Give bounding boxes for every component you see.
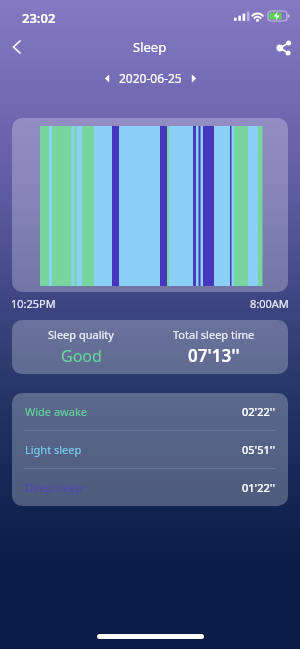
button[interactable]: Light sleep [12, 431, 288, 468]
staticText: Light sleep [25, 442, 82, 457]
staticText: Good [61, 345, 102, 367]
staticText: 10:25PM [11, 296, 56, 311]
staticText: 23:02 [22, 9, 56, 27]
staticText: 05'51'' [242, 442, 275, 457]
staticText: Sleep [133, 38, 167, 56]
staticText: Sleep quality [48, 327, 114, 342]
staticText: 01'22'' [242, 480, 275, 495]
button[interactable]: Wide awake [12, 393, 288, 430]
staticText: 8:00AM [250, 296, 289, 311]
staticText: Deep sleep [25, 480, 83, 495]
button[interactable] [191, 74, 197, 83]
button[interactable] [6, 36, 26, 58]
staticText: 07'13'' [188, 344, 240, 367]
staticText: 02'22'' [242, 404, 275, 419]
staticText: Total sleep time [173, 327, 255, 342]
staticText: Wide awake [25, 404, 87, 419]
button[interactable]: Deep sleep [12, 469, 288, 506]
staticText: 2020-06-25 [119, 70, 182, 86]
button[interactable] [273, 37, 295, 57]
button[interactable] [104, 74, 110, 83]
